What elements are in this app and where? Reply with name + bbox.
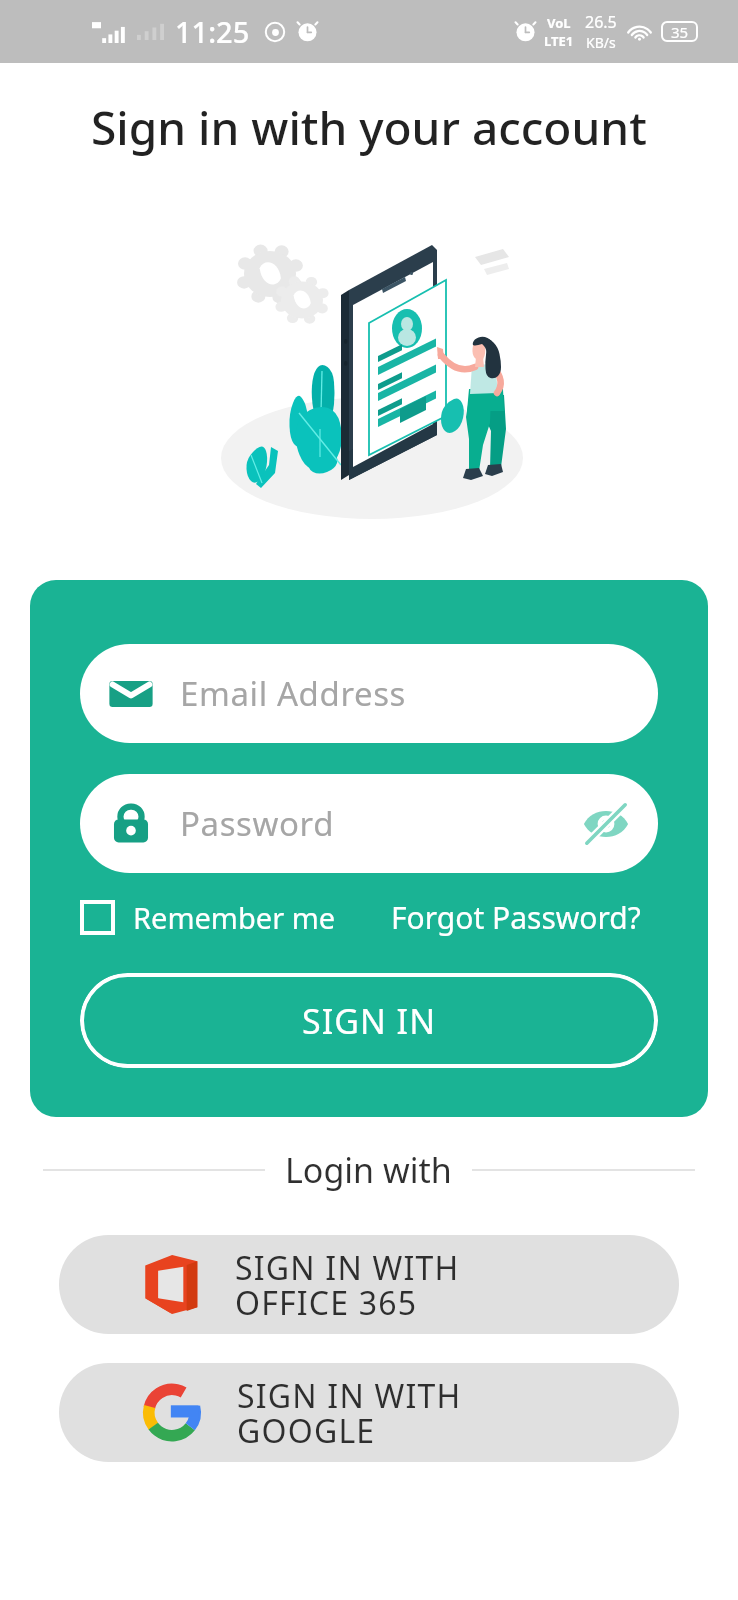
button[interactable]: SIGN IN WITH OFFICE 365 [59, 1235, 679, 1334]
button[interactable]: SIGN IN WITH GOOGLE [59, 1363, 679, 1462]
staticText: SIGN IN [302, 998, 436, 1044]
staticText: Password [180, 801, 335, 846]
staticText: Sign in with your account [91, 96, 647, 159]
button[interactable]: SIGN IN [80, 973, 658, 1068]
staticText: SIGN IN WITH OFFICE 365 [235, 1246, 460, 1324]
staticText: Login with [285, 1147, 452, 1193]
staticText: SIGN IN WITH GOOGLE [237, 1374, 462, 1452]
button[interactable]: Forgot Password? [391, 897, 641, 938]
staticText: Remember me [133, 898, 336, 937]
button[interactable]: Email Address [80, 644, 658, 743]
staticText: VoL [547, 14, 571, 32]
staticText: 35 [671, 22, 689, 42]
staticText: Forgot Password? [391, 897, 641, 938]
button[interactable]: Password [80, 774, 658, 873]
staticText: 26.5 [585, 11, 617, 33]
staticText: Email Address [180, 671, 406, 716]
staticText: LTE1 [544, 32, 574, 50]
button[interactable]: Show password [582, 800, 630, 848]
staticText: 11:25 [175, 12, 250, 51]
staticText: KB/s [586, 33, 616, 52]
button[interactable]: Remember me [80, 898, 336, 937]
